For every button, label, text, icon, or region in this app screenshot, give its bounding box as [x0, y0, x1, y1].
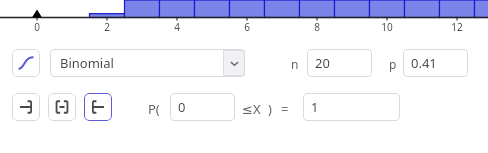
button[interactable]: Interval — [48, 93, 76, 121]
button[interactable]: 20 — [307, 49, 372, 77]
button[interactable]: Right tail — [84, 93, 112, 121]
staticText: 0 — [178, 98, 186, 116]
staticText: 0.41 — [411, 54, 437, 72]
staticText: 8 — [314, 20, 320, 34]
staticText: 4 — [174, 20, 180, 34]
staticText: P( — [148, 100, 160, 118]
staticText: n — [291, 56, 299, 72]
staticText: 2 — [104, 20, 110, 34]
staticText: 6 — [244, 20, 250, 34]
button[interactable]: Distribution type — [12, 49, 40, 77]
staticText: p — [389, 56, 397, 72]
staticText: Binomial — [60, 54, 114, 72]
staticText: 10 — [381, 20, 393, 34]
button[interactable]: Left tail — [12, 93, 40, 121]
button[interactable]: 0.41 — [403, 49, 468, 77]
staticText: = — [281, 100, 289, 118]
staticText: ) — [268, 100, 272, 118]
staticText: 12 — [451, 20, 463, 34]
button[interactable]: Binomial — [50, 49, 245, 77]
staticText: 0 — [34, 20, 40, 34]
staticText: ≤X — [242, 100, 261, 118]
staticText: 20 — [315, 54, 330, 72]
button[interactable]: 1 — [303, 93, 400, 121]
button[interactable]: 0 — [170, 93, 235, 121]
staticText: 1 — [311, 98, 319, 116]
